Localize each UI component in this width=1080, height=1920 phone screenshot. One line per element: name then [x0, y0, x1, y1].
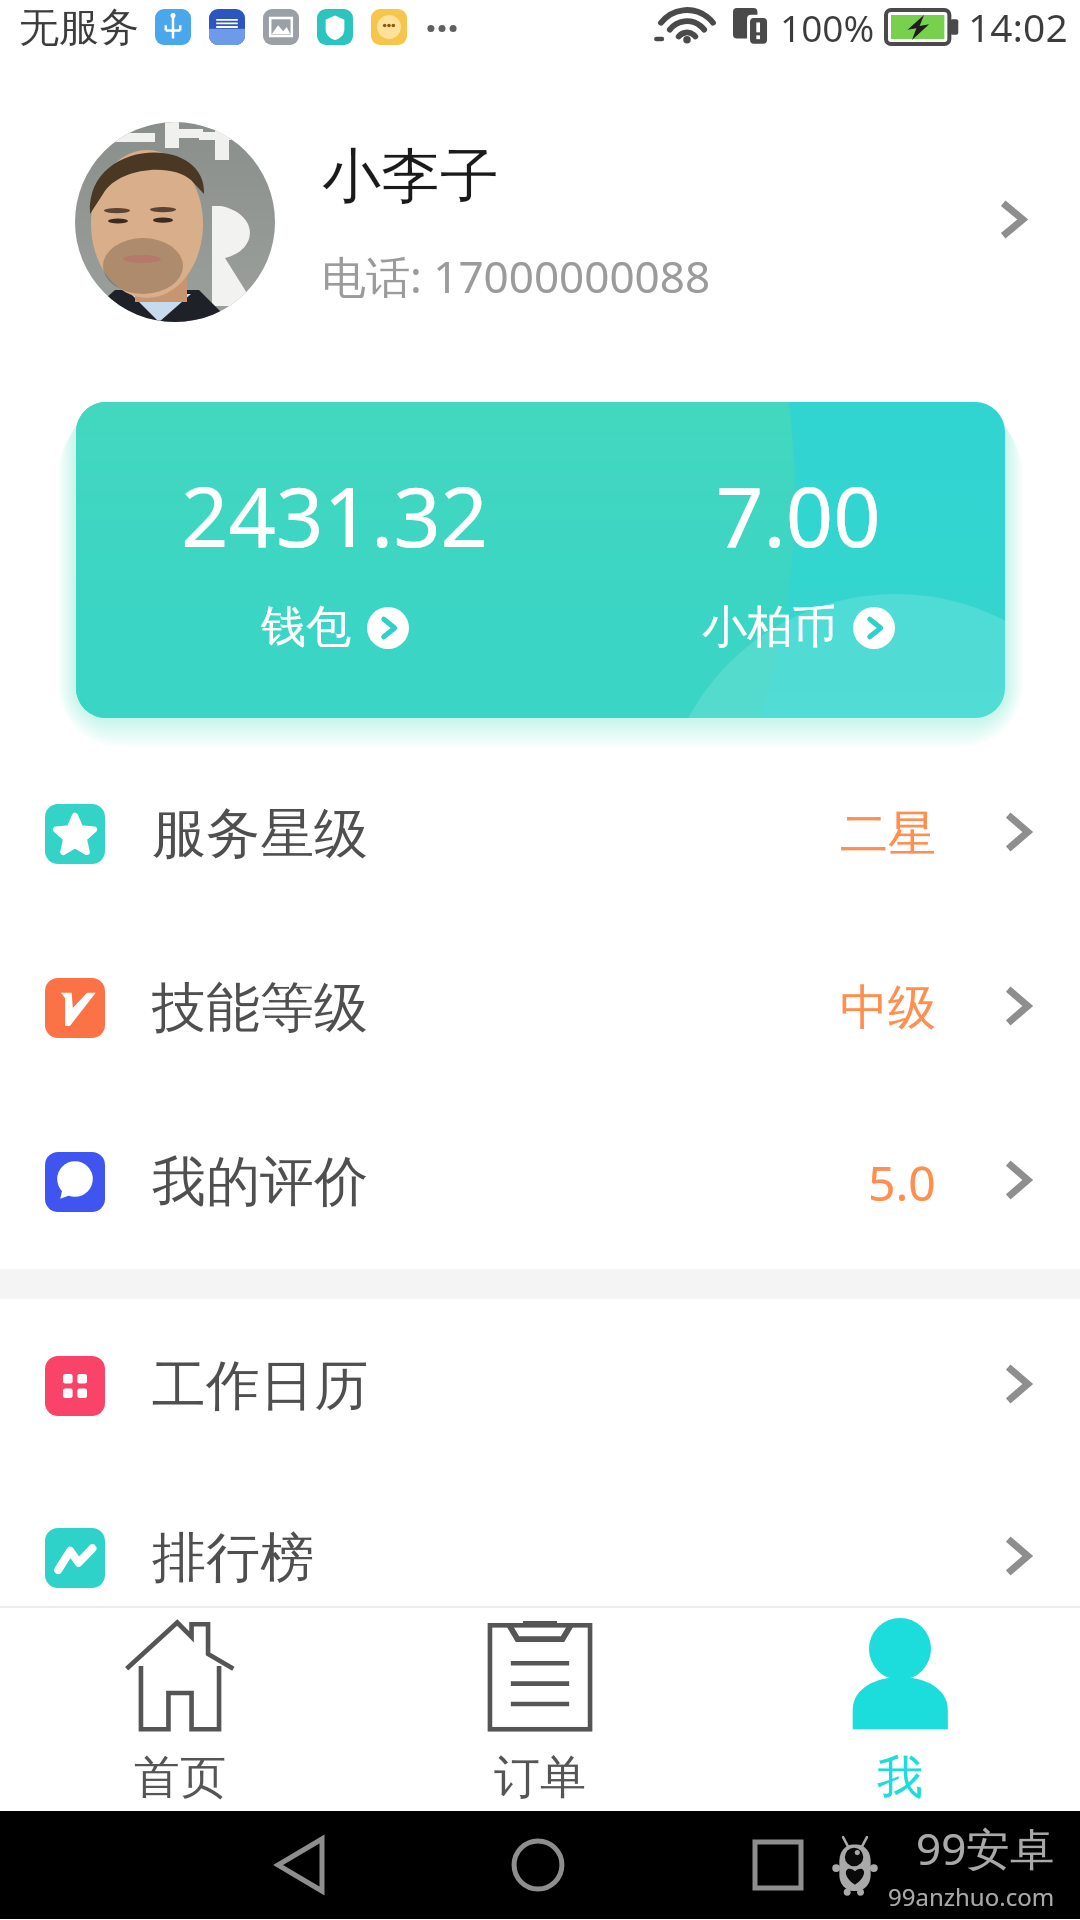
staticText: 100% [780, 2, 875, 52]
staticText: 电话: 17000000088 [322, 246, 711, 306]
staticText: 99anzhuo.com [888, 1880, 1055, 1913]
staticText: 二星 [840, 804, 936, 864]
button[interactable]: 订单 [360, 1608, 720, 1811]
staticText: 2431.32 [181, 458, 489, 571]
staticText: 技能等级 [152, 974, 368, 1042]
staticText: 14:02 [968, 0, 1068, 53]
staticText: 我 [877, 1749, 923, 1807]
staticText: 小李子 [322, 139, 499, 213]
button[interactable]: 排行榜 [0, 1472, 1080, 1606]
staticText: 7.00 [716, 458, 881, 571]
staticText: 订单 [494, 1749, 586, 1807]
staticText: 5.0 [868, 1150, 936, 1215]
staticText: 小柏币 [702, 599, 837, 656]
staticText: 服务星级 [152, 800, 368, 868]
button[interactable]: 我的评价 [0, 1095, 1080, 1269]
button[interactable]: 我 [720, 1608, 1080, 1811]
staticText: 钱包 [261, 599, 351, 656]
staticText: 排行榜 [152, 1524, 314, 1592]
staticText: 99安卓 [916, 1818, 1055, 1878]
staticText: 无服务 [19, 2, 139, 52]
staticText: 首页 [134, 1749, 226, 1807]
button[interactable]: 工作日历 [0, 1299, 1080, 1472]
button[interactable]: 小李子 [0, 70, 1080, 402]
staticText: 工作日历 [152, 1352, 368, 1420]
button[interactable]: 服务星级 [0, 747, 1080, 921]
staticText: 中级 [840, 978, 936, 1038]
button[interactable]: 2431.32 [76, 402, 594, 718]
button[interactable]: 技能等级 [0, 921, 1080, 1095]
other: Edit profile [999, 199, 1027, 240]
button[interactable]: 7.00 [539, 402, 1005, 718]
staticText: 我的评价 [152, 1148, 368, 1216]
button[interactable]: 首页 [0, 1608, 360, 1811]
